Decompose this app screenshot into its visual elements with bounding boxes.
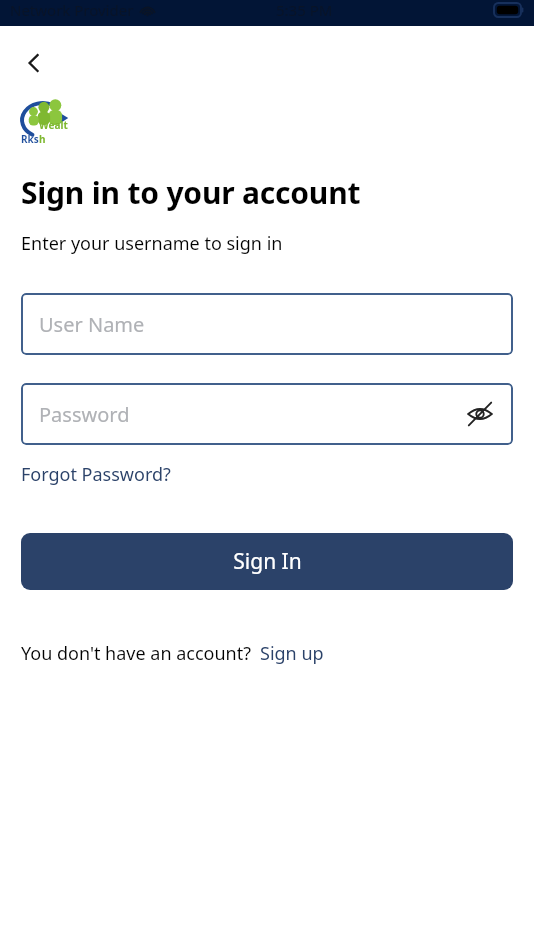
staticText: Sign up: [260, 641, 324, 666]
staticText: Sign In: [233, 547, 302, 576]
button[interactable]: Sign In: [21, 533, 513, 590]
button[interactable]: Forgot Password?: [21, 459, 171, 490]
staticText: Sign in to your account: [21, 172, 361, 213]
staticText: You don't have an account?: [21, 641, 252, 666]
staticText: Password: [39, 401, 130, 428]
button[interactable]: Back: [12, 41, 56, 85]
staticText: User Name: [39, 311, 145, 338]
button[interactable]: User Name: [21, 293, 513, 355]
button[interactable]: Password: [21, 383, 513, 445]
staticText: Forgot Password?: [21, 462, 171, 487]
staticText: Rks: [21, 132, 39, 146]
button[interactable]: Show password: [461, 395, 499, 433]
staticText: Enter your username to sign in: [21, 231, 283, 256]
button[interactable]: Sign up: [260, 638, 324, 669]
staticText: 5:35 PM: [276, 0, 333, 20]
staticText: Network Provider: [10, 0, 134, 20]
staticText: Wealth: [39, 118, 73, 146]
